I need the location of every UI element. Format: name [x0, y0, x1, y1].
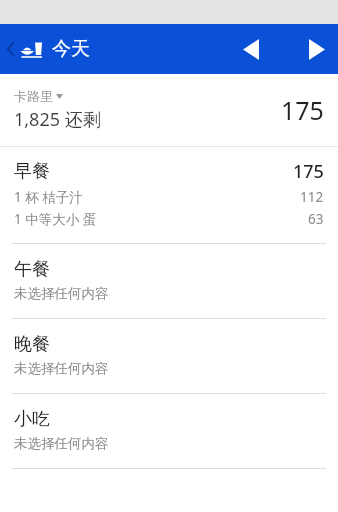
staticText: 1 杯 桔子汁 [14, 188, 300, 206]
staticText: 早餐 [14, 160, 293, 183]
button[interactable]: Next day [298, 24, 336, 74]
staticText: 午餐 [14, 258, 50, 281]
button[interactable]: 1 中等大小 蛋 [0, 207, 338, 229]
button[interactable]: 午餐 [0, 244, 338, 318]
button[interactable]: 卡路里 [0, 74, 338, 146]
staticText: 晚餐 [14, 333, 50, 356]
staticText: 1 中等大小 蛋 [14, 210, 308, 228]
staticText: 175 [281, 93, 324, 127]
button[interactable]: 晚餐 [0, 319, 338, 393]
button[interactable]: 今天 [0, 24, 100, 74]
staticText: 未选择任何内容 [14, 285, 109, 302]
button[interactable]: Previous day [232, 24, 270, 74]
staticText: 112 [300, 188, 324, 206]
staticText: 1,825 还剩 [14, 107, 101, 132]
staticText: 未选择任何内容 [14, 360, 109, 377]
staticText: 未选择任何内容 [14, 435, 109, 452]
staticText: 63 [308, 210, 324, 228]
staticText: 卡路里 [14, 88, 53, 104]
button[interactable]: 小吃 [0, 394, 338, 468]
button[interactable]: 早餐 [0, 147, 338, 185]
staticText: 小吃 [14, 408, 50, 431]
staticText: 175 [293, 159, 324, 184]
staticText: 今天 [52, 37, 90, 61]
button[interactable]: 1 杯 桔子汁 [0, 185, 338, 207]
